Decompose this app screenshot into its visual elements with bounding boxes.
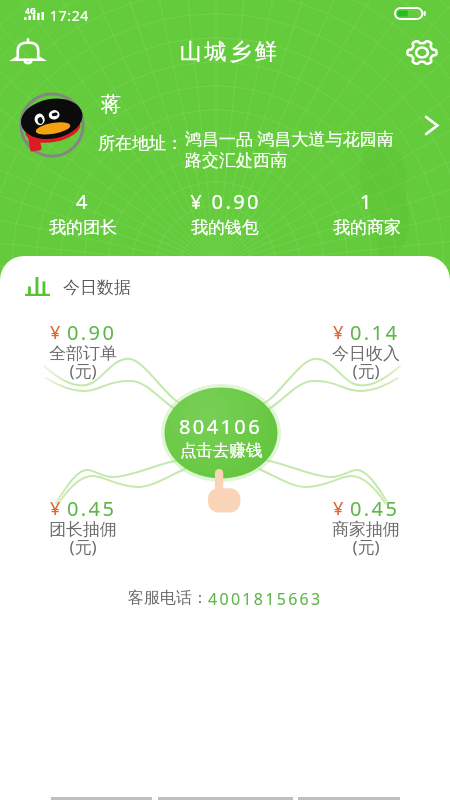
button[interactable] <box>18 183 148 245</box>
staticText: 我的团长 <box>49 217 117 238</box>
button[interactable]: Notifications <box>6 30 50 74</box>
staticText: 全部订单 <box>49 343 117 364</box>
button[interactable]: 点击去赚钱 <box>161 384 281 482</box>
staticText: 0.45 <box>67 495 117 522</box>
staticText: ¥ <box>50 496 61 521</box>
staticText: 山城乡鲜 <box>178 38 278 66</box>
staticText: 点击去赚钱 <box>180 440 263 461</box>
staticText: 我的钱包 <box>191 217 259 238</box>
staticText: (元) <box>352 535 380 558</box>
staticText: 今日数据 <box>63 277 131 298</box>
staticText: ¥ <box>333 496 344 521</box>
staticText: (元) <box>352 359 380 382</box>
staticText: 0.90 <box>67 319 117 346</box>
staticText: 4 <box>76 188 90 215</box>
staticText: 今日收入 <box>332 343 400 364</box>
staticText: ¥ <box>50 320 61 345</box>
staticText: 4001815663 <box>208 588 323 610</box>
staticText: 客服电话： <box>128 588 208 608</box>
staticText: ¥ 0.90 <box>190 188 261 215</box>
staticText: 蒋 <box>101 92 121 117</box>
button[interactable] <box>0 86 450 170</box>
button[interactable] <box>291 317 441 385</box>
button[interactable] <box>291 493 441 561</box>
staticText: 所在地址： <box>98 133 183 154</box>
button[interactable] <box>8 317 158 385</box>
staticText: ¥ <box>333 320 344 345</box>
staticText: (元) <box>69 535 97 558</box>
button[interactable] <box>8 493 158 561</box>
staticText: 我的商家 <box>333 217 401 238</box>
staticText: 1 <box>360 188 374 215</box>
button[interactable]: Settings <box>400 30 444 74</box>
button[interactable] <box>302 183 432 245</box>
staticText: 0.45 <box>350 495 400 522</box>
staticText: 17:24 <box>50 6 89 25</box>
staticText: 804106 <box>179 413 263 439</box>
staticText: (元) <box>69 359 97 382</box>
staticText: 商家抽佣 <box>332 519 400 540</box>
staticText: 团长抽佣 <box>49 519 117 540</box>
staticText: 鸿昌一品 鸿昌大道与花园南路交汇处西南 <box>185 127 399 171</box>
staticText: 0.14 <box>350 319 400 346</box>
button[interactable] <box>160 183 290 245</box>
staticText: 4G <box>25 5 36 16</box>
